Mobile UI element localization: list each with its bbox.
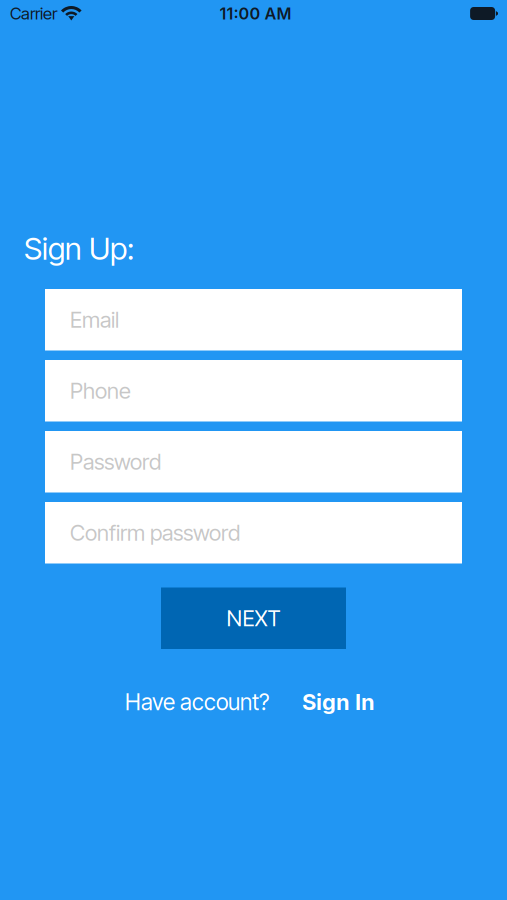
staticText: Sign In bbox=[302, 689, 375, 715]
button[interactable]: Sign In bbox=[302, 689, 375, 715]
staticText: Carrier bbox=[10, 3, 57, 24]
button[interactable]: Phone bbox=[45, 360, 462, 421]
button[interactable]: NEXT bbox=[161, 587, 346, 649]
staticText: Password bbox=[70, 448, 161, 475]
staticText: Confirm password bbox=[70, 519, 240, 546]
button[interactable]: Email bbox=[45, 289, 462, 350]
staticText: NEXT bbox=[226, 605, 280, 631]
staticText: Email bbox=[70, 306, 119, 333]
staticText: 11:00 AM bbox=[219, 4, 291, 23]
button[interactable]: Password bbox=[45, 431, 462, 492]
button[interactable]: Confirm password bbox=[45, 502, 462, 563]
staticText: Sign Up: bbox=[24, 230, 134, 267]
staticText: Phone bbox=[70, 377, 131, 404]
staticText: Have account? bbox=[125, 688, 269, 716]
